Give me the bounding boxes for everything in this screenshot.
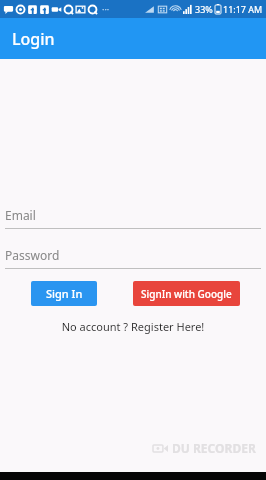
button[interactable]: Password — [5, 247, 261, 269]
button[interactable]: SignIn with Google — [133, 281, 240, 306]
staticText: 33% — [195, 3, 213, 15]
button[interactable]: No account ? Register Here! — [0, 316, 266, 337]
staticText: DU RECORDER — [172, 440, 256, 456]
staticText: Email — [5, 207, 36, 223]
staticText: 11:17 AM — [223, 3, 263, 15]
button[interactable]: Email — [5, 207, 261, 229]
staticText: ··· — [102, 3, 110, 15]
staticText: Login — [12, 28, 55, 50]
staticText: Password — [5, 247, 60, 263]
button[interactable]: Sign In — [31, 281, 97, 306]
staticText: Sign In — [46, 286, 83, 301]
staticText: SignIn with Google — [141, 287, 232, 301]
